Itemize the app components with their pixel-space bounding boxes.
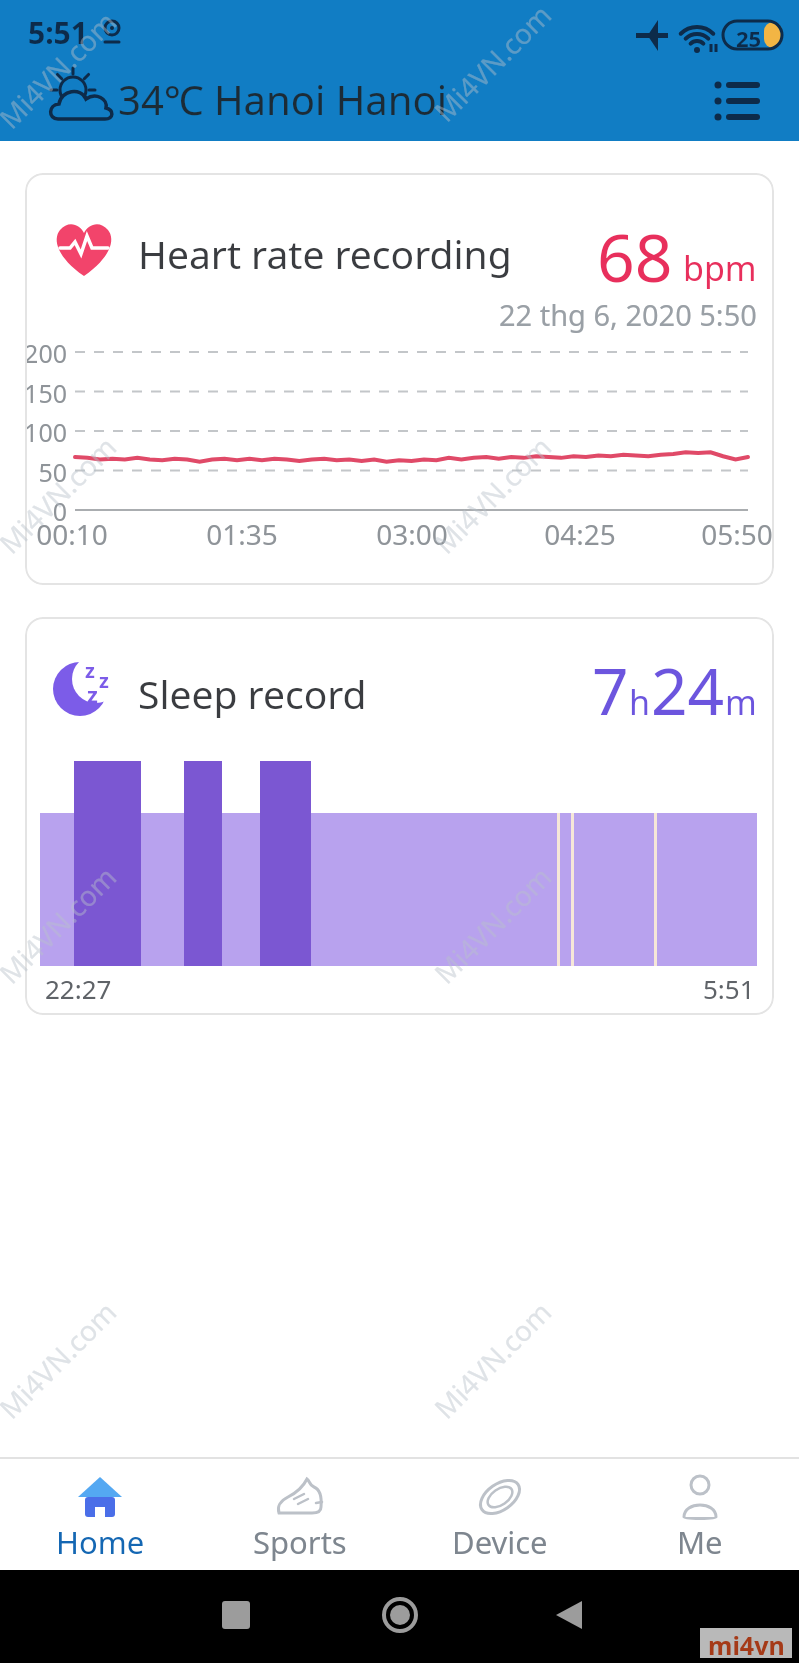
staticText: 100 xyxy=(25,415,67,449)
button[interactable]: Home xyxy=(40,1465,160,1565)
button[interactable]: z xyxy=(25,617,774,1015)
staticText: 03:00 xyxy=(367,515,457,553)
staticText: 24 xyxy=(651,647,725,734)
staticText: Mi4VN.com xyxy=(425,428,559,561)
staticText: z xyxy=(87,679,98,709)
staticText: 22 thg 6, 2020 5:50 xyxy=(499,295,757,334)
button[interactable]: Device xyxy=(440,1465,560,1565)
button[interactable] xyxy=(712,78,764,124)
staticText: 00:10 xyxy=(27,515,117,553)
staticText: z xyxy=(85,657,95,684)
staticText: m xyxy=(725,679,757,725)
staticText: Mi4VN.com xyxy=(0,428,124,561)
staticText: 68 xyxy=(597,211,673,301)
staticText: 5:51 xyxy=(28,12,88,53)
staticText: 50 xyxy=(25,455,67,489)
staticText: Mi4VN.com xyxy=(425,0,559,129)
staticText: 04:25 xyxy=(535,515,625,553)
staticText: z xyxy=(99,667,109,694)
staticText: 5:51 xyxy=(703,971,755,1006)
staticText: Sports xyxy=(253,1521,347,1563)
staticText: Sleep record xyxy=(138,667,367,720)
staticText: Home xyxy=(56,1521,145,1563)
staticText: 25 xyxy=(736,23,762,53)
staticText: 7 xyxy=(592,647,629,734)
staticText: 34℃ Hanoi Hanoi xyxy=(118,72,447,126)
staticText: Mi4VN.com xyxy=(0,858,124,991)
staticText: 150 xyxy=(25,376,67,410)
staticText: mi4vn xyxy=(708,1628,785,1658)
button[interactable]: Sports xyxy=(240,1465,360,1565)
staticText: 200 xyxy=(25,336,67,370)
staticText: Mi4VN.com xyxy=(425,1293,559,1426)
staticText: Device xyxy=(452,1521,548,1563)
staticText: 22:27 xyxy=(45,971,112,1006)
staticText: 05:50 xyxy=(692,515,774,553)
staticText: 01:35 xyxy=(197,515,287,553)
staticText: Mi4VN.com xyxy=(425,858,559,991)
staticText: bpm xyxy=(683,245,757,291)
staticText: Mi4VN.com xyxy=(0,3,124,136)
button[interactable]: Me xyxy=(640,1465,760,1565)
button[interactable]: Heart rate recording xyxy=(25,173,774,585)
staticText: Heart rate recording xyxy=(138,227,512,280)
staticText: Mi4VN.com xyxy=(0,1293,124,1426)
staticText: Me xyxy=(677,1521,723,1563)
staticText: 0 xyxy=(25,494,67,528)
staticText: h xyxy=(629,679,651,725)
